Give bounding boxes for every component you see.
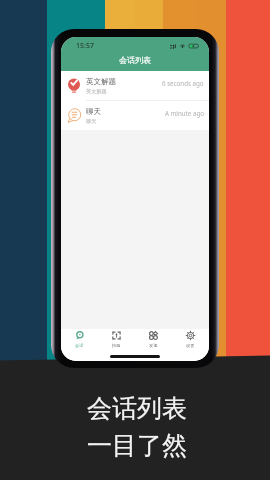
button[interactable]: Scan question [98,331,135,353]
staticText: 会话列表 [119,55,151,65]
button[interactable]: Discover [135,331,172,353]
staticText: 15:57 [76,41,94,51]
staticText: 拍题 [112,343,121,348]
staticText: 会话列表 [87,393,187,424]
staticText: 会话 [75,343,84,348]
button[interactable]: Conversations [61,331,98,353]
button[interactable]: 英文解题 [61,71,209,100]
staticText: 一目了然 [87,430,187,461]
button[interactable]: 聊天 [61,101,209,130]
staticText: 6 seconds ago [162,79,204,87]
staticText: 聊天 [86,107,101,116]
staticText: A minute ago [165,109,204,117]
staticText: 聊天 [86,118,97,125]
button[interactable]: Settings [172,331,209,353]
staticText: 英文解题 [86,88,107,95]
staticText: 英文解题 [86,77,116,86]
staticText: 设置 [186,343,195,348]
staticText: 发现 [149,343,158,348]
